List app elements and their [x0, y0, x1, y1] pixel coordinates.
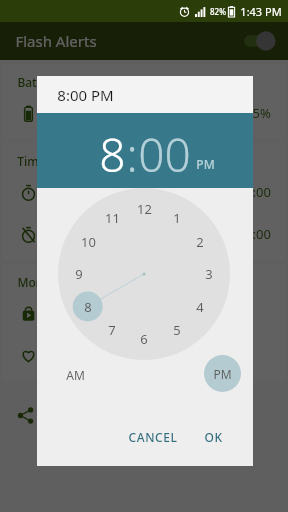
- staticText: 8:00 PM: [57, 85, 114, 105]
- staticText: 1: [173, 209, 181, 227]
- button[interactable]: More apps: [3, 292, 285, 334]
- staticText: 5: [173, 321, 181, 339]
- button[interactable]: End time: [3, 213, 285, 255]
- button[interactable]: CANCEL: [120, 423, 186, 451]
- staticText: 6: [140, 330, 148, 348]
- staticText: 2: [196, 233, 204, 251]
- staticText: 3: [205, 265, 213, 283]
- staticText: 15%: [245, 104, 271, 122]
- button[interactable]: 12: [132, 197, 156, 221]
- button[interactable]: 10: [76, 230, 100, 254]
- staticText: 4: [196, 298, 204, 316]
- staticText: 8:00: [245, 225, 271, 243]
- button[interactable]: Low battery: [3, 92, 285, 134]
- button[interactable]: Start time: [3, 171, 285, 213]
- button[interactable]: 00: [138, 119, 191, 182]
- button[interactable]: 6: [132, 327, 156, 351]
- staticText: 82%: [210, 6, 226, 17]
- button[interactable]: 3: [197, 262, 221, 286]
- button[interactable]: Share: [0, 393, 288, 437]
- button[interactable]: PM: [196, 156, 215, 182]
- staticText: 9: [75, 265, 83, 283]
- button[interactable]: 11: [100, 206, 124, 230]
- button[interactable]: PM: [204, 355, 241, 392]
- button[interactable]: 7: [100, 318, 124, 342]
- staticText: PM: [213, 366, 232, 382]
- button[interactable]: 9: [67, 262, 91, 286]
- staticText: 8:00: [245, 183, 271, 201]
- staticText: Low battery: [57, 104, 130, 122]
- staticText: Timing: [17, 153, 57, 169]
- button[interactable]: 1: [165, 206, 189, 230]
- button[interactable]: 2: [188, 230, 212, 254]
- button[interactable]: 4: [188, 295, 212, 319]
- staticText: 12: [137, 200, 152, 218]
- staticText: OK: [204, 429, 223, 445]
- staticText: More: [17, 274, 48, 290]
- staticText: End time: [57, 225, 112, 243]
- staticText: 11: [105, 209, 120, 227]
- staticText: Flash Alerts: [15, 31, 97, 51]
- button[interactable]: 8: [76, 295, 100, 319]
- staticText: 7: [108, 321, 116, 339]
- button[interactable]: OK: [196, 423, 231, 451]
- staticText: More apps: [57, 304, 122, 322]
- button[interactable]: Rate us: [3, 334, 285, 376]
- button[interactable]: AM: [57, 357, 93, 393]
- staticText: :: [126, 123, 138, 186]
- staticText: Battery: [17, 74, 60, 90]
- staticText: 8: [84, 298, 92, 316]
- button[interactable]: Enable flash alerts: [242, 30, 276, 52]
- staticText: 10: [81, 233, 96, 251]
- button[interactable]: 5: [165, 318, 189, 342]
- button[interactable]: 8: [99, 119, 126, 182]
- staticText: CANCEL: [128, 429, 178, 445]
- staticText: Start time: [57, 183, 118, 201]
- staticText: AM: [66, 367, 85, 383]
- staticText: 1:43 PM: [240, 4, 282, 19]
